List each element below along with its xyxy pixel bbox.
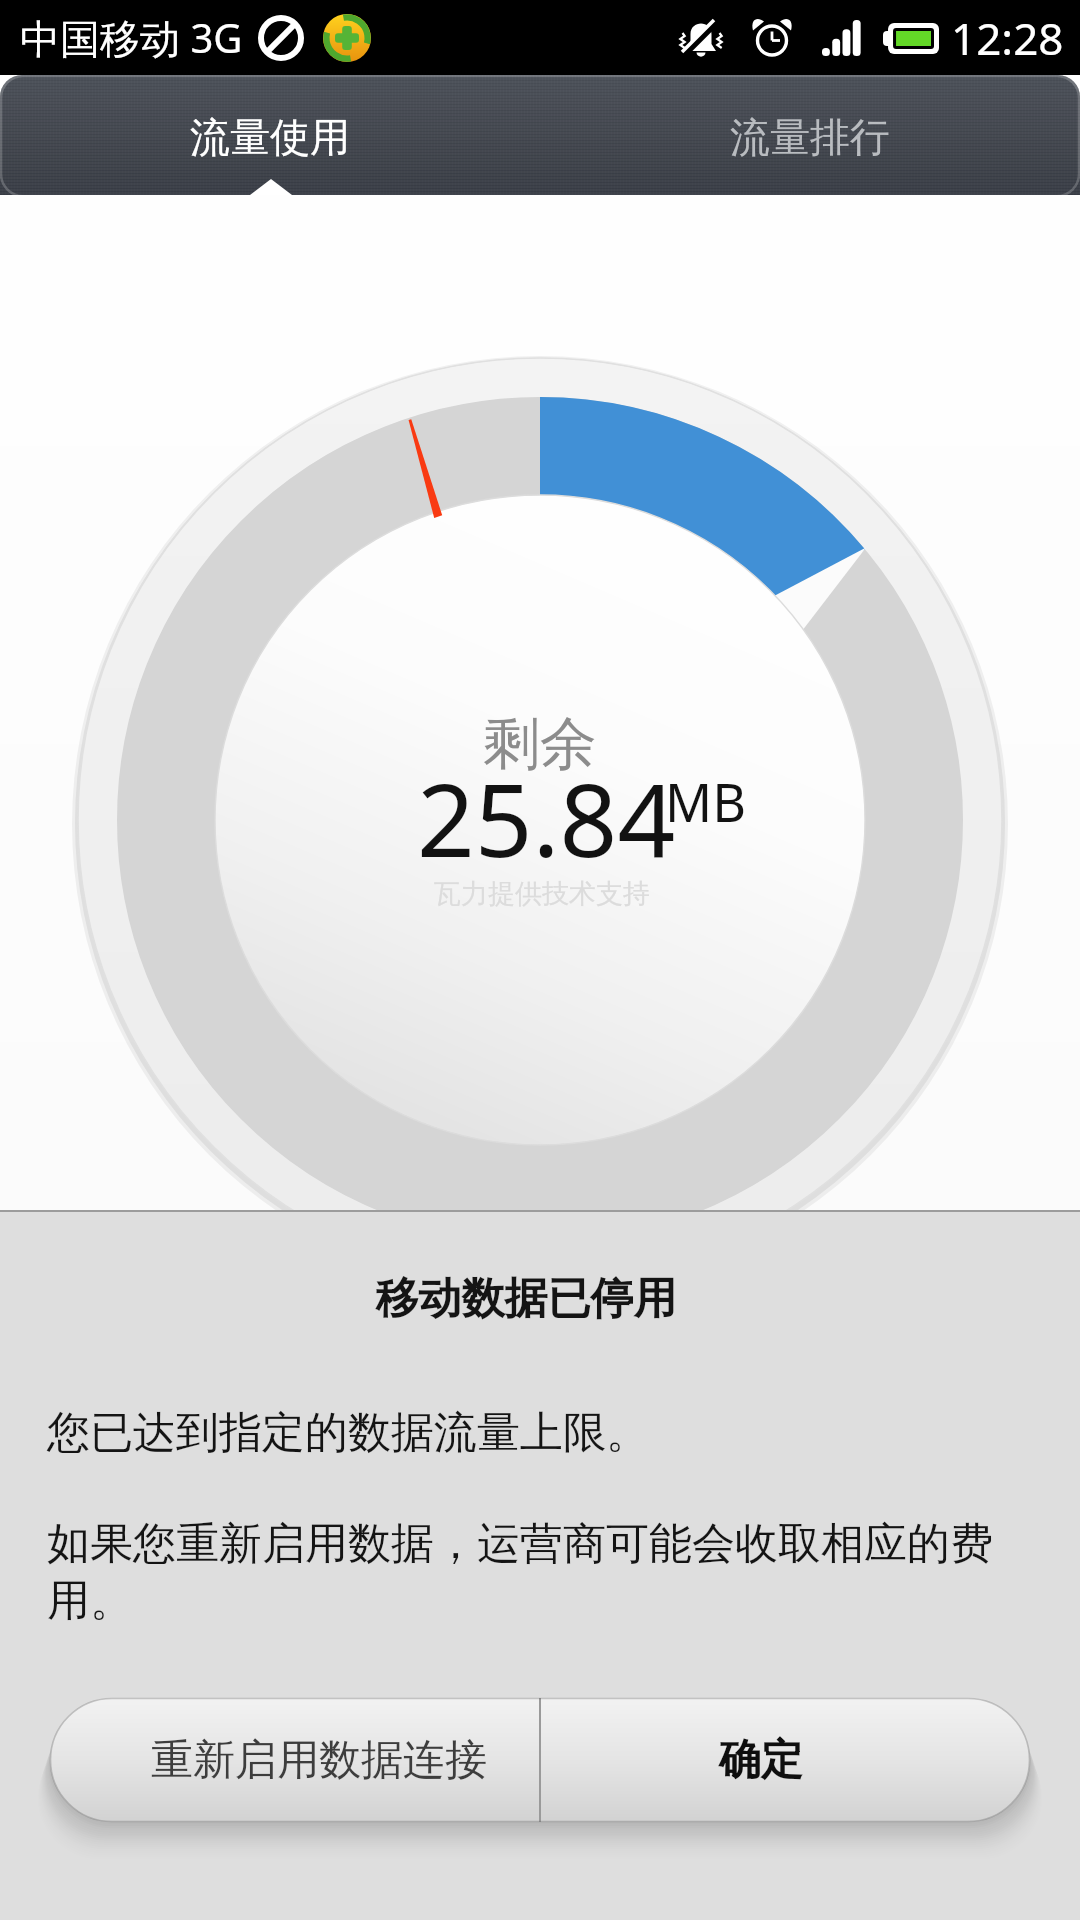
- other: Silent mode: [679, 18, 725, 58]
- staticText: 12:28: [951, 8, 1064, 68]
- other: Security: [323, 14, 371, 62]
- staticText: 剩余: [0, 708, 1080, 780]
- staticText: 25.84: [417, 749, 676, 887]
- staticText: 如果您重新启用数据，运营商可能会收取相应的费用。: [47, 1517, 1007, 1628]
- staticText: 您已达到指定的数据流量上限。: [47, 1406, 649, 1460]
- staticText: 移动数据已停用: [0, 1272, 1066, 1326]
- staticText: 确定: [719, 1734, 803, 1787]
- other: Alarm: [750, 18, 794, 58]
- staticText: 流量排行: [730, 112, 890, 162]
- staticText: 流量使用: [190, 112, 350, 162]
- button[interactable]: 流量排行: [540, 75, 1080, 195]
- staticText: MB: [665, 766, 746, 837]
- staticText: 瓦力提供技术支持: [2, 877, 1080, 911]
- button[interactable]: 确定: [541, 1698, 1030, 1822]
- button[interactable]: 流量使用: [0, 75, 540, 195]
- staticText: 重新启用数据连接: [151, 1734, 487, 1787]
- button[interactable]: 重新启用数据连接: [50, 1698, 539, 1822]
- staticText: 中国移动 3G: [20, 10, 243, 65]
